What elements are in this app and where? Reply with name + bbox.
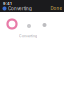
staticText: Converting <box>8 6 32 11</box>
staticText: Converting <box>19 34 37 38</box>
staticText: 9:41 <box>3 1 12 6</box>
staticText: Done <box>50 6 61 11</box>
